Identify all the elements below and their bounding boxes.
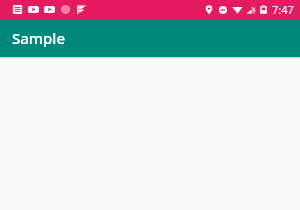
staticText: Sample xyxy=(12,28,65,48)
staticText: 7:47 xyxy=(272,2,294,17)
